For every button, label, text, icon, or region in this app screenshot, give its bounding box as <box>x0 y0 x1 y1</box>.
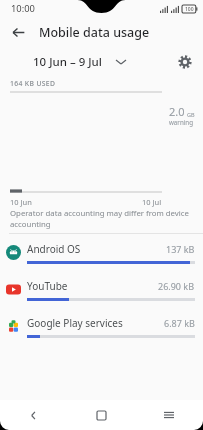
button[interactable]: YouTube <box>0 271 203 308</box>
staticText: GB <box>187 111 195 118</box>
staticText: 10 Jun – 9 Jul <box>33 54 102 70</box>
staticText: Operator data accounting may differ from… <box>10 208 189 230</box>
staticText: Android OS <box>27 242 166 256</box>
staticText: Google Play services <box>27 316 164 330</box>
staticText: 164 KB USED <box>10 79 56 88</box>
button[interactable]: Google Play services <box>0 308 203 345</box>
button[interactable]: Settings <box>174 51 196 73</box>
staticText: 6.87 kB <box>164 317 195 329</box>
staticText: warning <box>169 118 193 126</box>
staticText: 2.0 <box>169 104 185 119</box>
staticText: 137 kB <box>166 243 195 255</box>
staticText: 100 <box>185 6 194 13</box>
button[interactable]: Back <box>6 20 30 44</box>
staticText: YouTube <box>27 279 158 293</box>
button[interactable]: Home <box>67 400 135 430</box>
staticText: 10:00 <box>11 2 35 15</box>
button[interactable]: Back <box>0 400 67 430</box>
staticText: 26.90 kB <box>158 280 195 292</box>
button[interactable]: Recent apps <box>135 400 203 430</box>
button[interactable]: Android OS <box>0 234 203 271</box>
staticText: 10 Jul <box>142 197 162 207</box>
staticText: 10 Jun <box>10 197 32 207</box>
staticText: Mobile data usage <box>39 24 150 41</box>
button[interactable]: 10 Jun – 9 Jul <box>29 51 130 73</box>
